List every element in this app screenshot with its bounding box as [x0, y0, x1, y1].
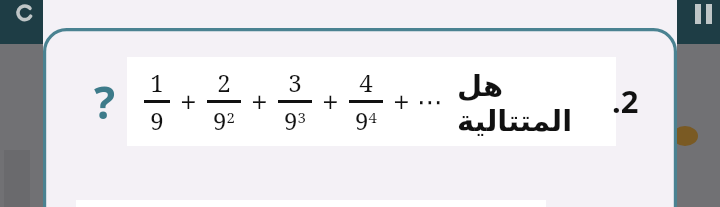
staticText: ⋯ [417, 87, 443, 117]
staticText: 94 [355, 104, 377, 137]
staticText: 9 [150, 104, 164, 137]
staticText: 4 [359, 66, 373, 99]
button[interactable]: Question [88, 72, 120, 124]
staticText: + [180, 81, 197, 122]
staticText: + [393, 81, 410, 122]
staticText: 3 [288, 66, 302, 99]
staticText: + [322, 81, 339, 122]
staticText: 1 [150, 66, 164, 99]
button[interactable]: .2 [612, 74, 639, 128]
staticText: 2 [217, 66, 231, 99]
staticText: ? [94, 72, 115, 124]
staticText: + [251, 81, 268, 122]
button[interactable]: 1 [127, 57, 616, 146]
staticText: 93 [284, 104, 306, 137]
other: Notification [14, 2, 36, 24]
staticText: .2 [612, 80, 639, 122]
button[interactable] [43, 28, 677, 207]
staticText: 92 [213, 104, 235, 137]
staticText: هل المتتالية [457, 65, 616, 138]
